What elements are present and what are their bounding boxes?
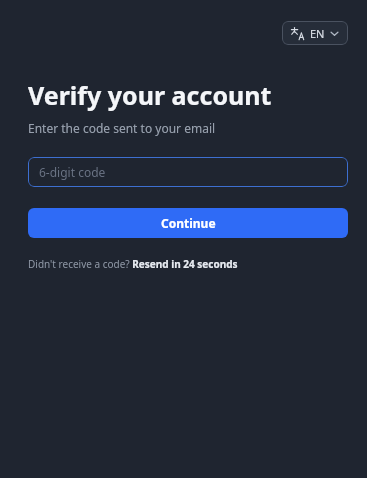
staticText: Didn't receive a code? Resend in 24 seco… [28,257,238,271]
staticText: 6-digit code [39,164,106,180]
button[interactable]: Change language [282,21,348,45]
button[interactable]: Continue [28,208,348,238]
other: Change language [291,27,304,40]
staticText: Enter the code sent to your email [28,120,216,136]
staticText: EN [310,26,325,41]
button[interactable]: 6-digit code [28,157,348,187]
staticText: Verify your account [28,78,272,112]
staticText: Continue [161,215,216,231]
button[interactable]: Didn't receive a code? Resend in 24 seco… [28,257,238,271]
